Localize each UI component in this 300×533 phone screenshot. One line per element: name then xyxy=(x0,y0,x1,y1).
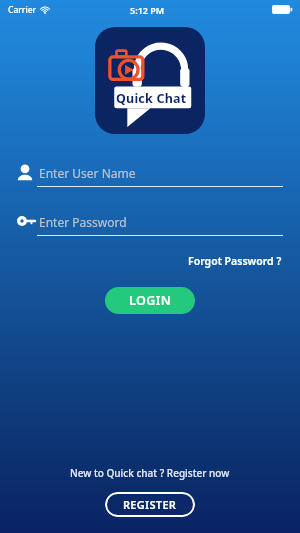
button[interactable]: LOGIN xyxy=(105,287,195,314)
staticText: 5:12 PM xyxy=(130,4,165,16)
button[interactable]: Enter User Name xyxy=(10,160,290,190)
staticText: Carrier xyxy=(8,4,37,16)
button[interactable]: Enter Password xyxy=(10,209,290,239)
staticText: Quick Chat xyxy=(116,90,187,107)
staticText: Forgot Password ? xyxy=(188,254,282,268)
button[interactable]: Forgot Password ? xyxy=(182,249,288,273)
button[interactable]: REGISTER xyxy=(105,492,195,517)
staticText: Enter Password xyxy=(39,214,127,230)
button[interactable]: New to Quick chat ? Register now xyxy=(64,463,236,483)
staticText: REGISTER xyxy=(123,497,177,512)
staticText: LOGIN xyxy=(129,292,172,309)
staticText: New to Quick chat ? Register now xyxy=(70,466,230,480)
staticText: Enter User Name xyxy=(39,165,136,181)
